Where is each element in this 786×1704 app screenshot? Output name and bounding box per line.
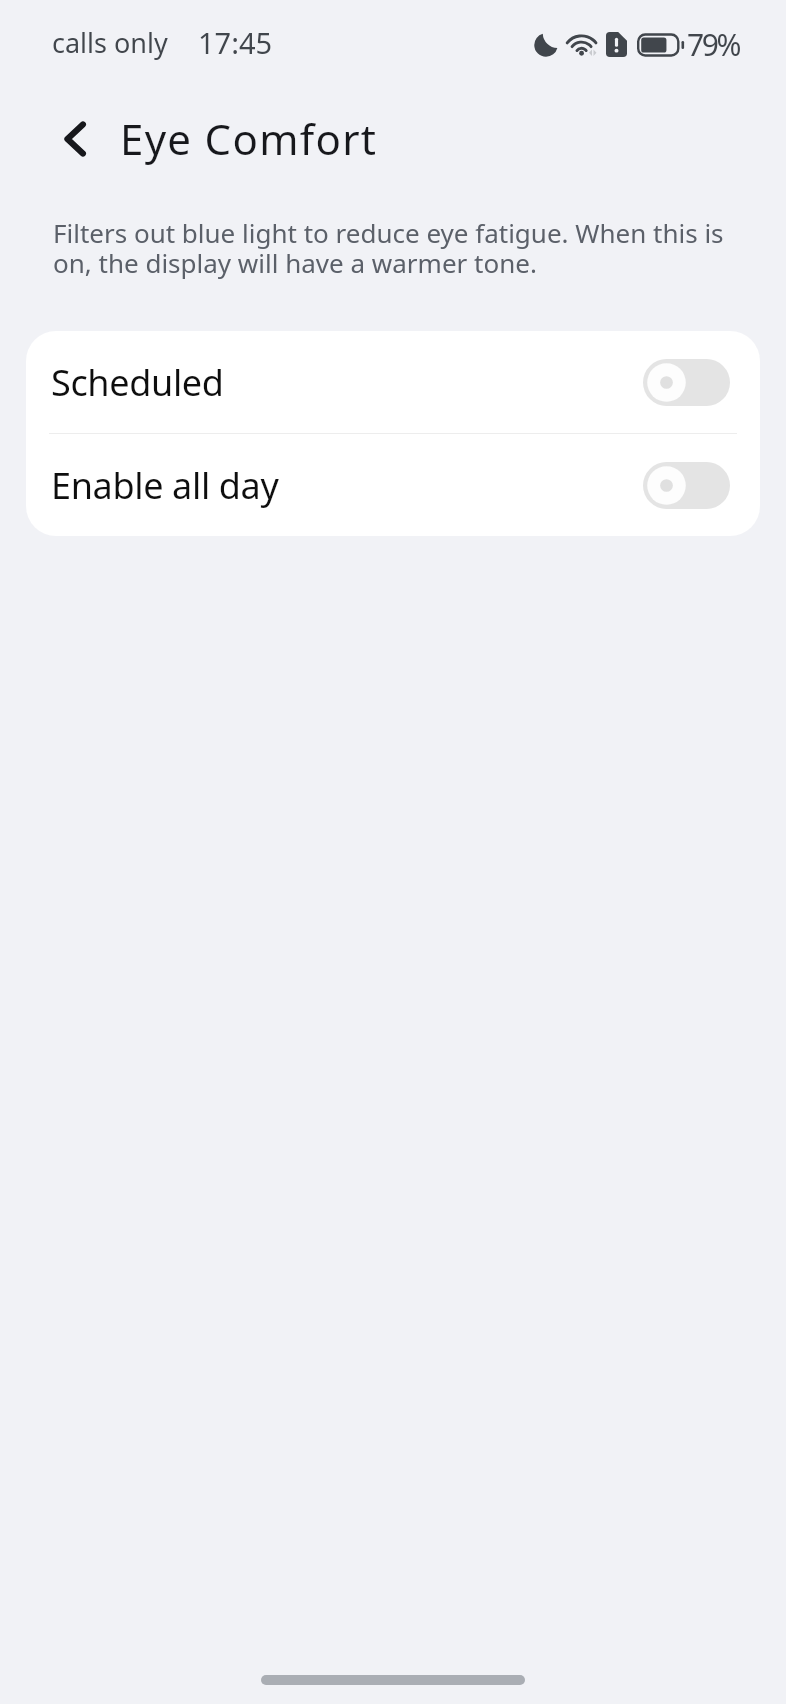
button[interactable]: Enable all day off (643, 462, 730, 509)
staticText: Filters out blue light to reduce eye fat… (53, 215, 724, 280)
staticText: Enable all day (51, 461, 279, 510)
button[interactable]: Back (45, 111, 101, 167)
button[interactable]: Scheduled (26, 331, 760, 433)
staticText: Scheduled (51, 358, 224, 407)
staticText: Eye Comfort (120, 110, 378, 167)
staticText: calls only (52, 24, 168, 61)
staticText: 17:45 (198, 23, 273, 62)
button[interactable]: Enable all day (26, 434, 760, 536)
staticText: 79% (687, 24, 740, 65)
button[interactable]: Scheduled off (643, 359, 730, 406)
